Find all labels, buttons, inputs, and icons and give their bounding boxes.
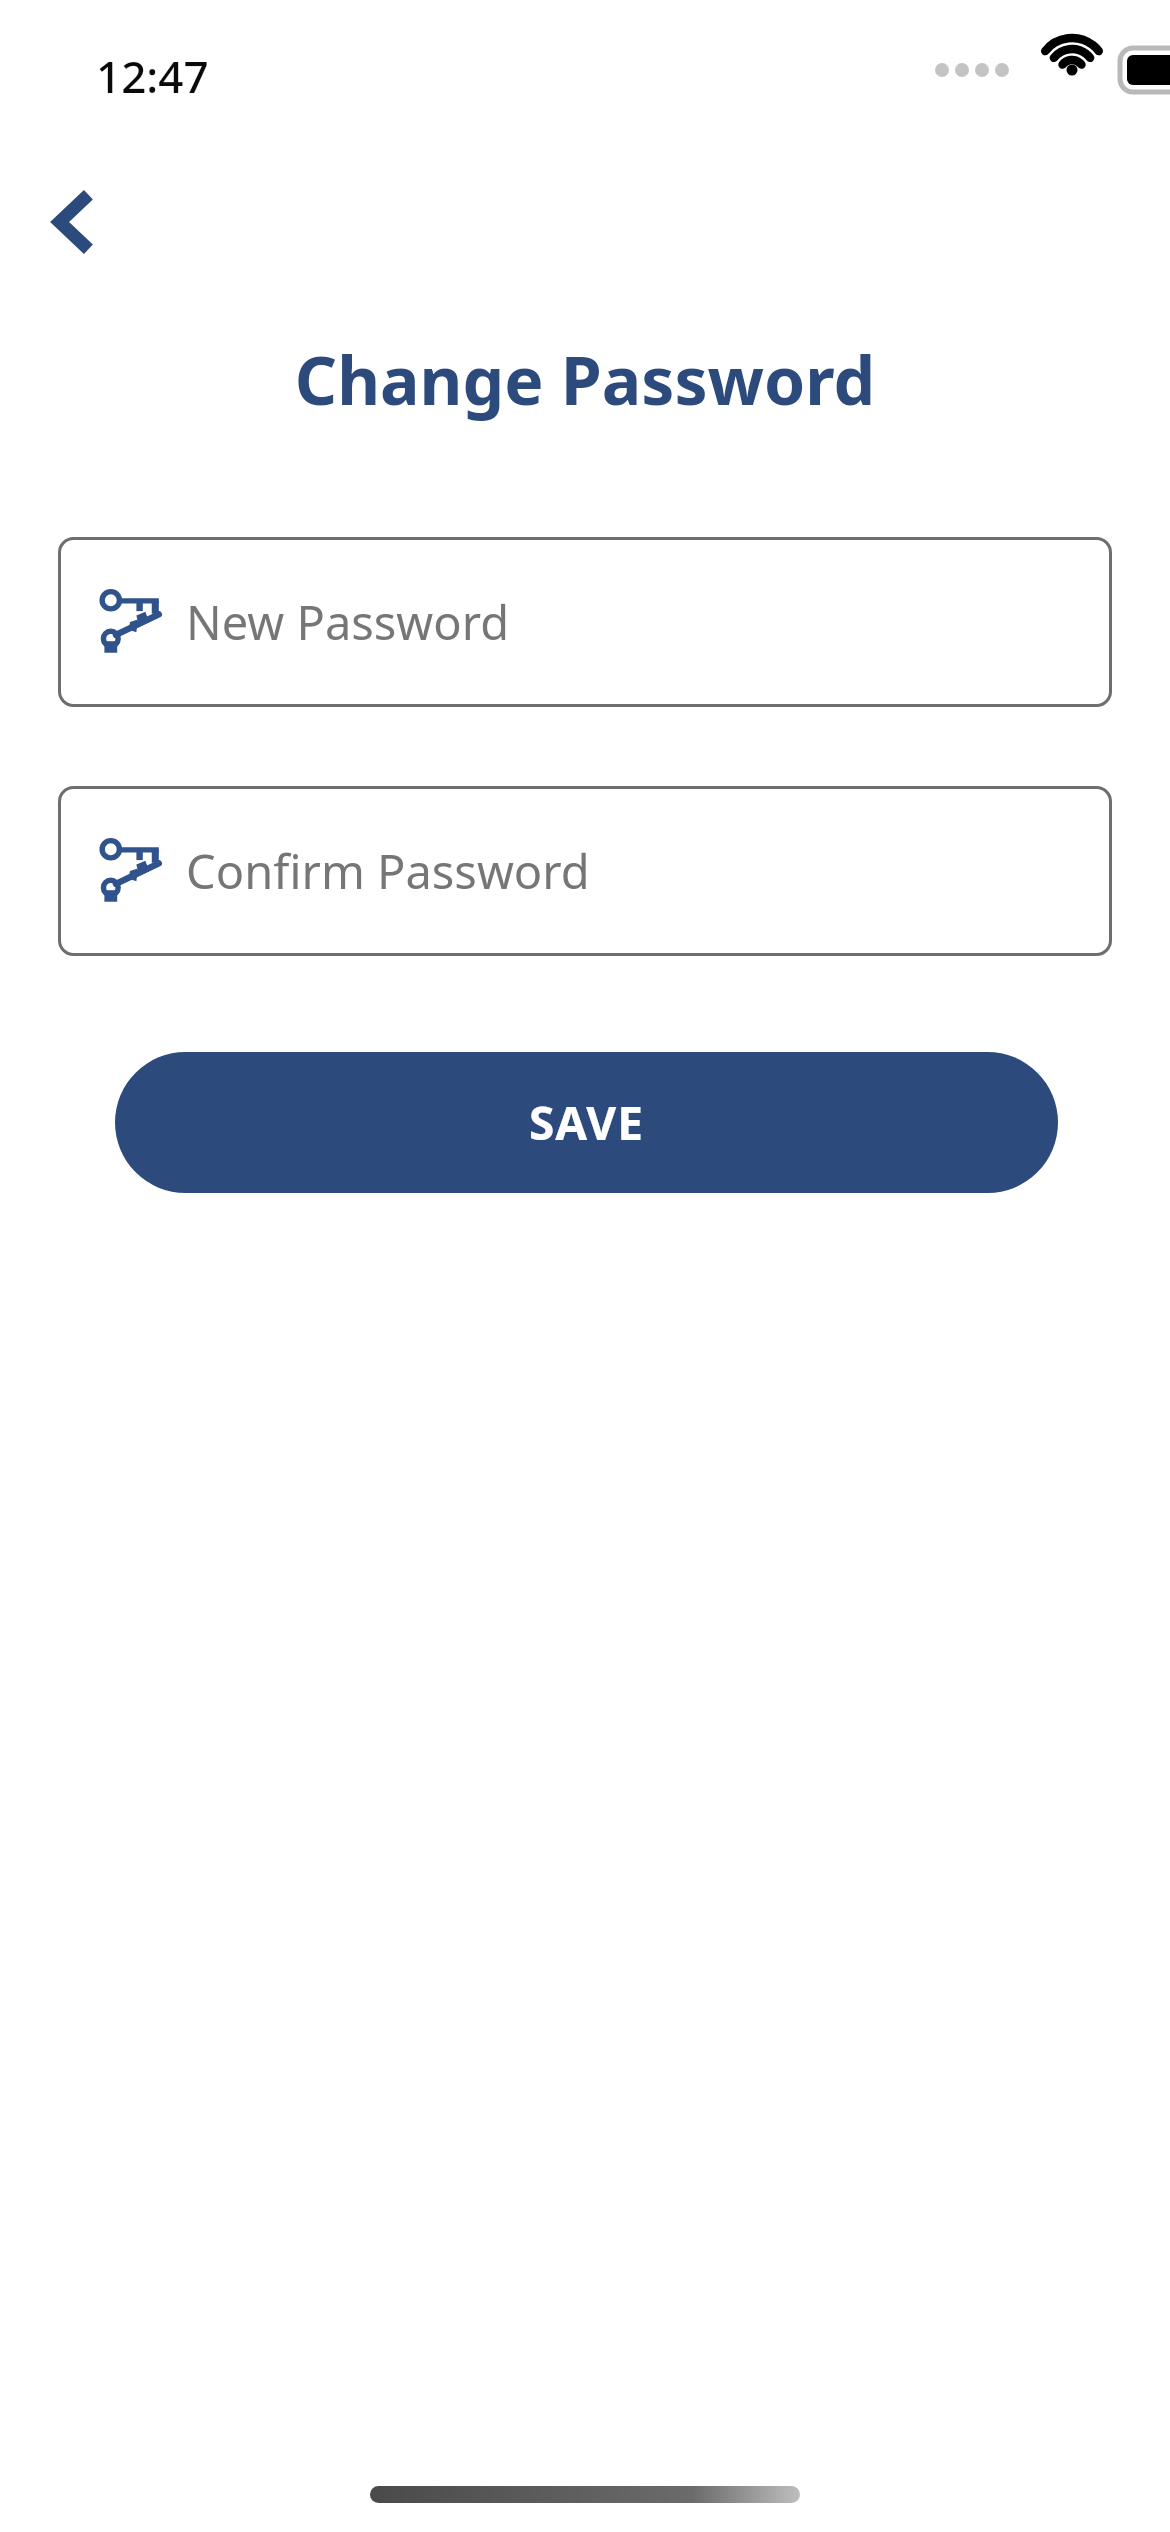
- button[interactable]: Back: [24, 172, 124, 272]
- staticText: Change Password: [0, 334, 1170, 424]
- staticText: SAVE: [529, 1091, 644, 1154]
- button[interactable]: SAVE: [115, 1052, 1058, 1193]
- button[interactable]: New Password: [58, 537, 1112, 707]
- staticText: New Password: [186, 590, 510, 654]
- staticText: Confirm Password: [186, 839, 590, 903]
- staticText: 12:47: [96, 46, 209, 106]
- button[interactable]: Confirm Password: [58, 786, 1112, 956]
